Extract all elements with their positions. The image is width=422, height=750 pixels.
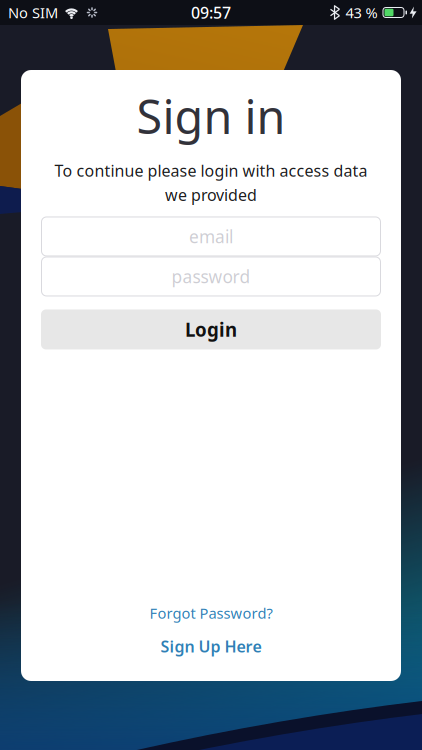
staticText: Login (185, 317, 237, 342)
staticText: Sign Up Here (160, 636, 261, 657)
staticText: Sign in (136, 85, 285, 147)
staticText: we provided (165, 184, 257, 205)
button[interactable]: Sign Up Here (160, 636, 261, 657)
button[interactable]: Login (41, 309, 381, 349)
staticText: 09:57 (191, 2, 231, 23)
staticText: password (171, 265, 250, 288)
staticText: Forgot Password? (149, 603, 272, 623)
staticText: To continue please login with access dat… (54, 160, 367, 181)
button[interactable]: Forgot Password? (149, 603, 272, 623)
staticText: email (189, 225, 233, 248)
button[interactable]: password (41, 256, 381, 296)
staticText: No SIM (8, 3, 58, 22)
button[interactable]: email (41, 216, 381, 256)
staticText: 43 % (345, 3, 377, 22)
